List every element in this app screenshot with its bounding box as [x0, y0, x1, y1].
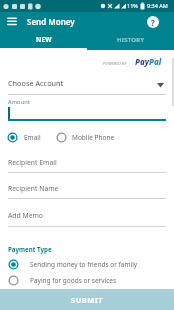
staticText: SUBMIT: [71, 295, 104, 305]
staticText: Choose Account: [8, 78, 64, 88]
staticText: Recipient Email: [8, 158, 57, 167]
staticText: POWERED BY: [103, 61, 127, 66]
staticText: Send Money: [27, 16, 75, 27]
staticText: Sending money to friends or family: [30, 260, 138, 269]
staticText: ?: [151, 17, 155, 28]
staticText: Mobile Phone: [72, 133, 115, 142]
staticText: NEW: [36, 35, 52, 44]
staticText: Amount: [8, 98, 30, 106]
staticText: 9:34 AM: [147, 2, 168, 9]
staticText: HISTORY: [117, 36, 145, 44]
staticText: Payment Type: [8, 245, 52, 253]
staticText: 11%: [127, 2, 138, 9]
staticText: PayPal: [135, 56, 162, 67]
staticText: Add Memo: [8, 211, 43, 220]
staticText: Email: [24, 133, 41, 142]
staticText: Paying for goods or services: [30, 276, 117, 285]
staticText: Recipient Name: [8, 184, 59, 193]
